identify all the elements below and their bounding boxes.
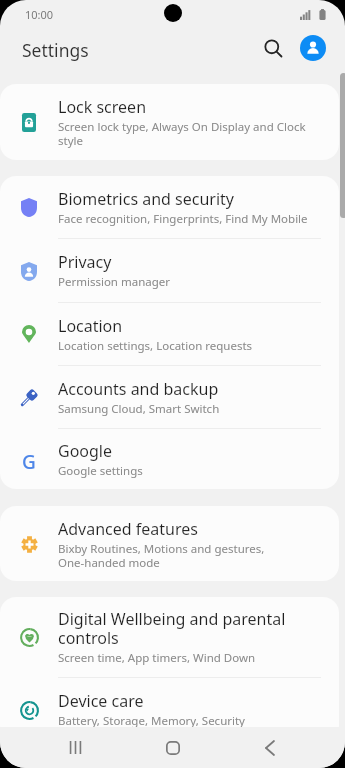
button[interactable]: Biometrics and security: [0, 176, 339, 238]
button[interactable]: Accounts and backup: [0, 366, 339, 428]
staticText: Google: [58, 440, 113, 462]
button[interactable]: Home: [150, 727, 196, 768]
button[interactable]: G: [0, 429, 339, 489]
button[interactable]: Back: [247, 727, 293, 768]
staticText: Location: [58, 315, 123, 337]
button[interactable]: Account: [300, 35, 326, 61]
staticText: Biometrics and security: [58, 188, 235, 210]
button[interactable]: Advanced features: [0, 506, 339, 581]
staticText: 10:00: [25, 7, 54, 22]
staticText: Battery, Storage, Memory, Security: [58, 713, 245, 727]
staticText: Settings: [22, 38, 89, 62]
staticText: Bixby Routines, Motions and gestures, On…: [58, 541, 313, 570]
staticText: Lock screen: [58, 96, 147, 118]
staticText: Permission manager: [58, 274, 171, 290]
staticText: Google settings: [58, 463, 143, 479]
staticText: G: [22, 449, 36, 469]
button[interactable]: Digital Wellbeing and parental controls: [0, 597, 339, 677]
staticText: Samsung Cloud, Smart Switch: [58, 401, 220, 417]
button[interactable]: Recents: [52, 727, 98, 768]
button[interactable]: Lock screen: [0, 84, 339, 160]
staticText: Location settings, Location requests: [58, 338, 253, 354]
staticText: Screen lock type, Always On Display and …: [58, 119, 313, 148]
button[interactable]: Privacy: [0, 239, 339, 302]
button[interactable]: Location: [0, 303, 339, 365]
staticText: Accounts and backup: [58, 378, 219, 400]
staticText: Privacy: [58, 251, 112, 273]
staticText: Advanced features: [58, 518, 198, 540]
button[interactable]: Search: [256, 32, 290, 66]
staticText: Screen time, App timers, Wind Down: [58, 650, 256, 666]
button[interactable]: Device care: [0, 678, 339, 727]
staticText: Device care: [58, 690, 144, 712]
staticText: Digital Wellbeing and parental controls: [58, 608, 313, 649]
staticText: Face recognition, Fingerprints, Find My …: [58, 211, 308, 227]
